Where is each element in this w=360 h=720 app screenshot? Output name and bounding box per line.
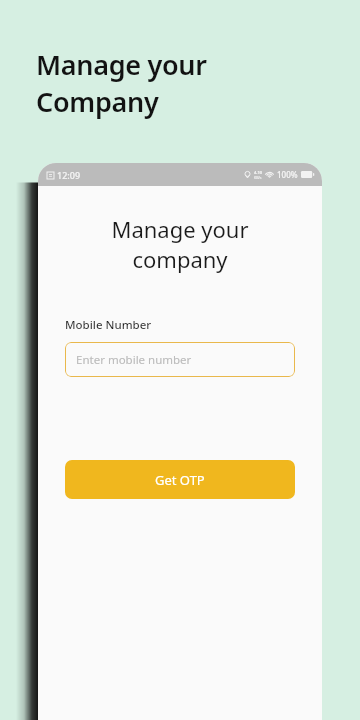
staticText: Enter mobile number xyxy=(76,352,192,368)
staticText: Mobile Number xyxy=(65,317,152,333)
staticText: Get OTP xyxy=(155,471,205,489)
staticText: 100% xyxy=(277,169,298,180)
staticText: 12:09 xyxy=(57,169,81,181)
staticText: Company xyxy=(36,83,159,120)
staticText: KB/s xyxy=(254,175,262,180)
staticText: Manage your company xyxy=(56,214,304,275)
staticText: 4.10 xyxy=(254,170,262,175)
button[interactable]: Enter mobile number xyxy=(65,342,295,377)
button[interactable]: Get OTP xyxy=(65,460,295,499)
staticText: Manage your xyxy=(36,46,207,83)
